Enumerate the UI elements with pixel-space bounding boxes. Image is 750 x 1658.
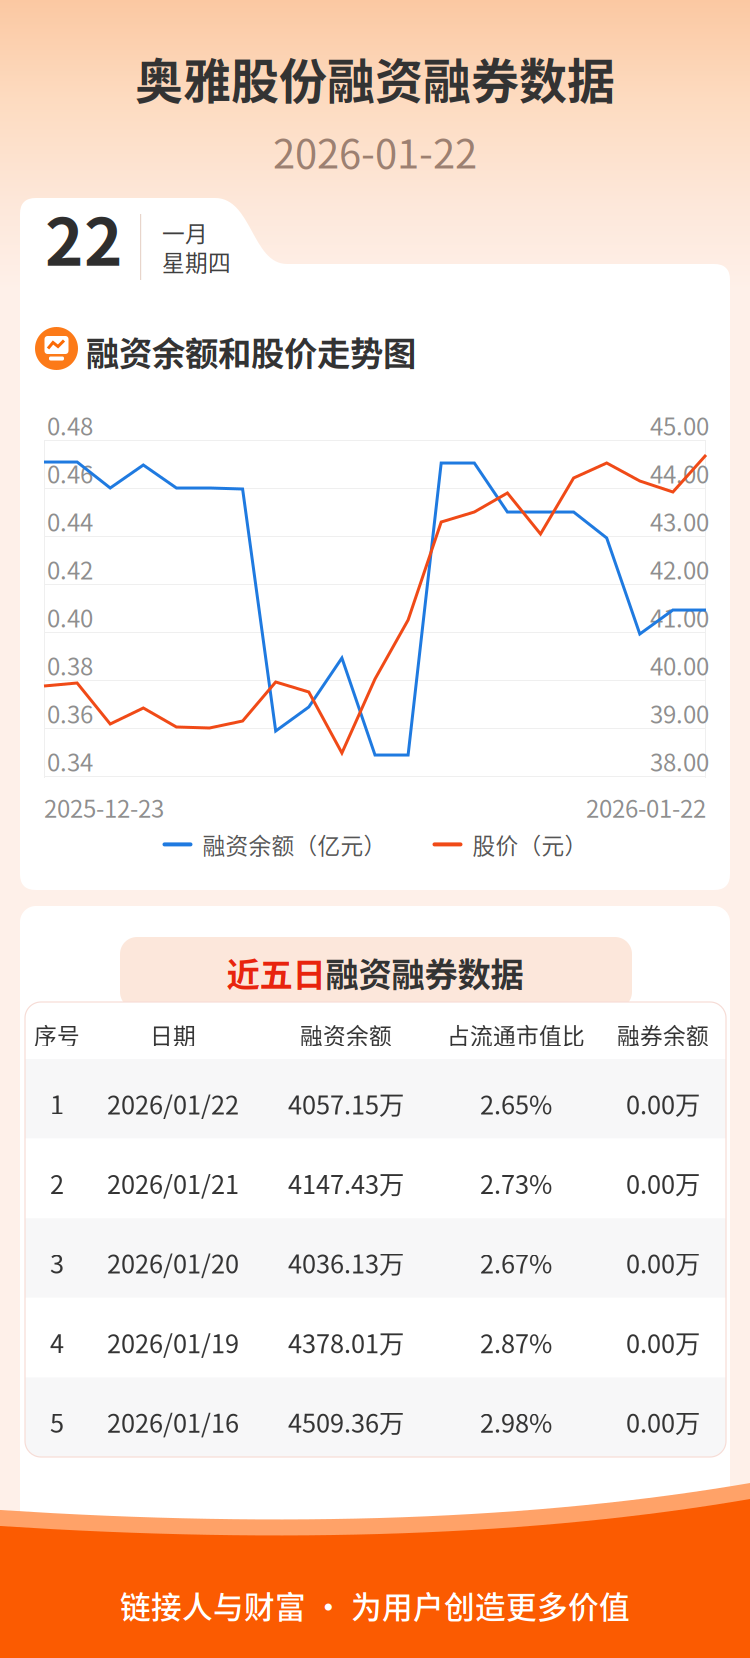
staticText: 2026/01/21 [107,1165,239,1201]
staticText: 0.00万 [626,1403,700,1440]
staticText: 40.00 [650,648,709,682]
staticText: 融资余额（亿元） [192,828,386,861]
staticText: 2026/01/22 [107,1085,239,1122]
staticText: 0.00万 [626,1085,700,1122]
staticText: 0.00万 [626,1165,700,1201]
staticText: 0.48 [47,408,93,442]
staticText: 4147.43万 [288,1165,404,1201]
staticText: 0.00万 [626,1324,700,1360]
staticText: 0.46 [47,456,93,490]
staticText: 0.00万 [626,1244,700,1281]
staticText: 2026/01/20 [107,1244,239,1281]
staticText: 2026/01/19 [107,1324,239,1360]
staticText: 42.00 [650,552,709,586]
staticText: 4 [50,1324,64,1360]
staticText: 2.65% [480,1085,552,1122]
staticText: 2026-01-22 [273,122,477,180]
staticText: 38.00 [650,744,709,778]
staticText: 融资余额 [300,1018,392,1051]
staticText: 2025-12-23 [44,790,164,825]
staticText: 4509.36万 [288,1403,404,1440]
staticText: 2 [50,1165,64,1201]
staticText: 0.38 [47,648,93,682]
staticText: 股价（元） [462,828,587,861]
staticText: 0.34 [47,744,93,778]
staticText: 43.00 [650,504,709,538]
staticText: 2.73% [480,1165,552,1201]
staticText: 3 [50,1244,64,1281]
staticText: 2.87% [480,1324,552,1360]
staticText: 5 [50,1403,64,1440]
staticText: 星期四 [162,245,231,278]
staticText: 4378.01万 [288,1324,404,1360]
staticText: 0.42 [47,552,93,586]
staticText: 序号 [34,1018,80,1051]
staticText: 45.00 [650,408,709,442]
staticText: 0.40 [47,600,93,634]
staticText: 22 [45,190,123,285]
staticText: 近五日 [226,948,325,996]
staticText: 2.67% [480,1244,552,1281]
staticText: 日期 [150,1018,196,1051]
staticText: 融券余额 [617,1018,709,1051]
staticText: 4057.15万 [288,1085,404,1122]
staticText: 链接人与财富 · 为用户创造更多价值 [120,1583,630,1627]
staticText: 0.44 [47,504,93,538]
staticText: 0.36 [47,696,93,730]
staticText: 4036.13万 [288,1244,404,1281]
staticText: 一月 [162,216,208,249]
staticText: 2.98% [480,1403,552,1440]
staticText: 44.00 [650,456,709,490]
staticText: 融资融券数据 [325,948,523,996]
staticText: 融资余额和股价走势图 [86,327,416,375]
staticText: 占流通市值比 [447,1018,585,1051]
staticText: 41.00 [650,600,709,634]
staticText: 2026/01/16 [107,1403,239,1440]
staticText: 39.00 [650,696,709,730]
staticText: 奥雅股份融资融券数据 [135,43,615,112]
staticText: 1 [50,1085,64,1122]
staticText: 2026-01-22 [586,790,706,825]
